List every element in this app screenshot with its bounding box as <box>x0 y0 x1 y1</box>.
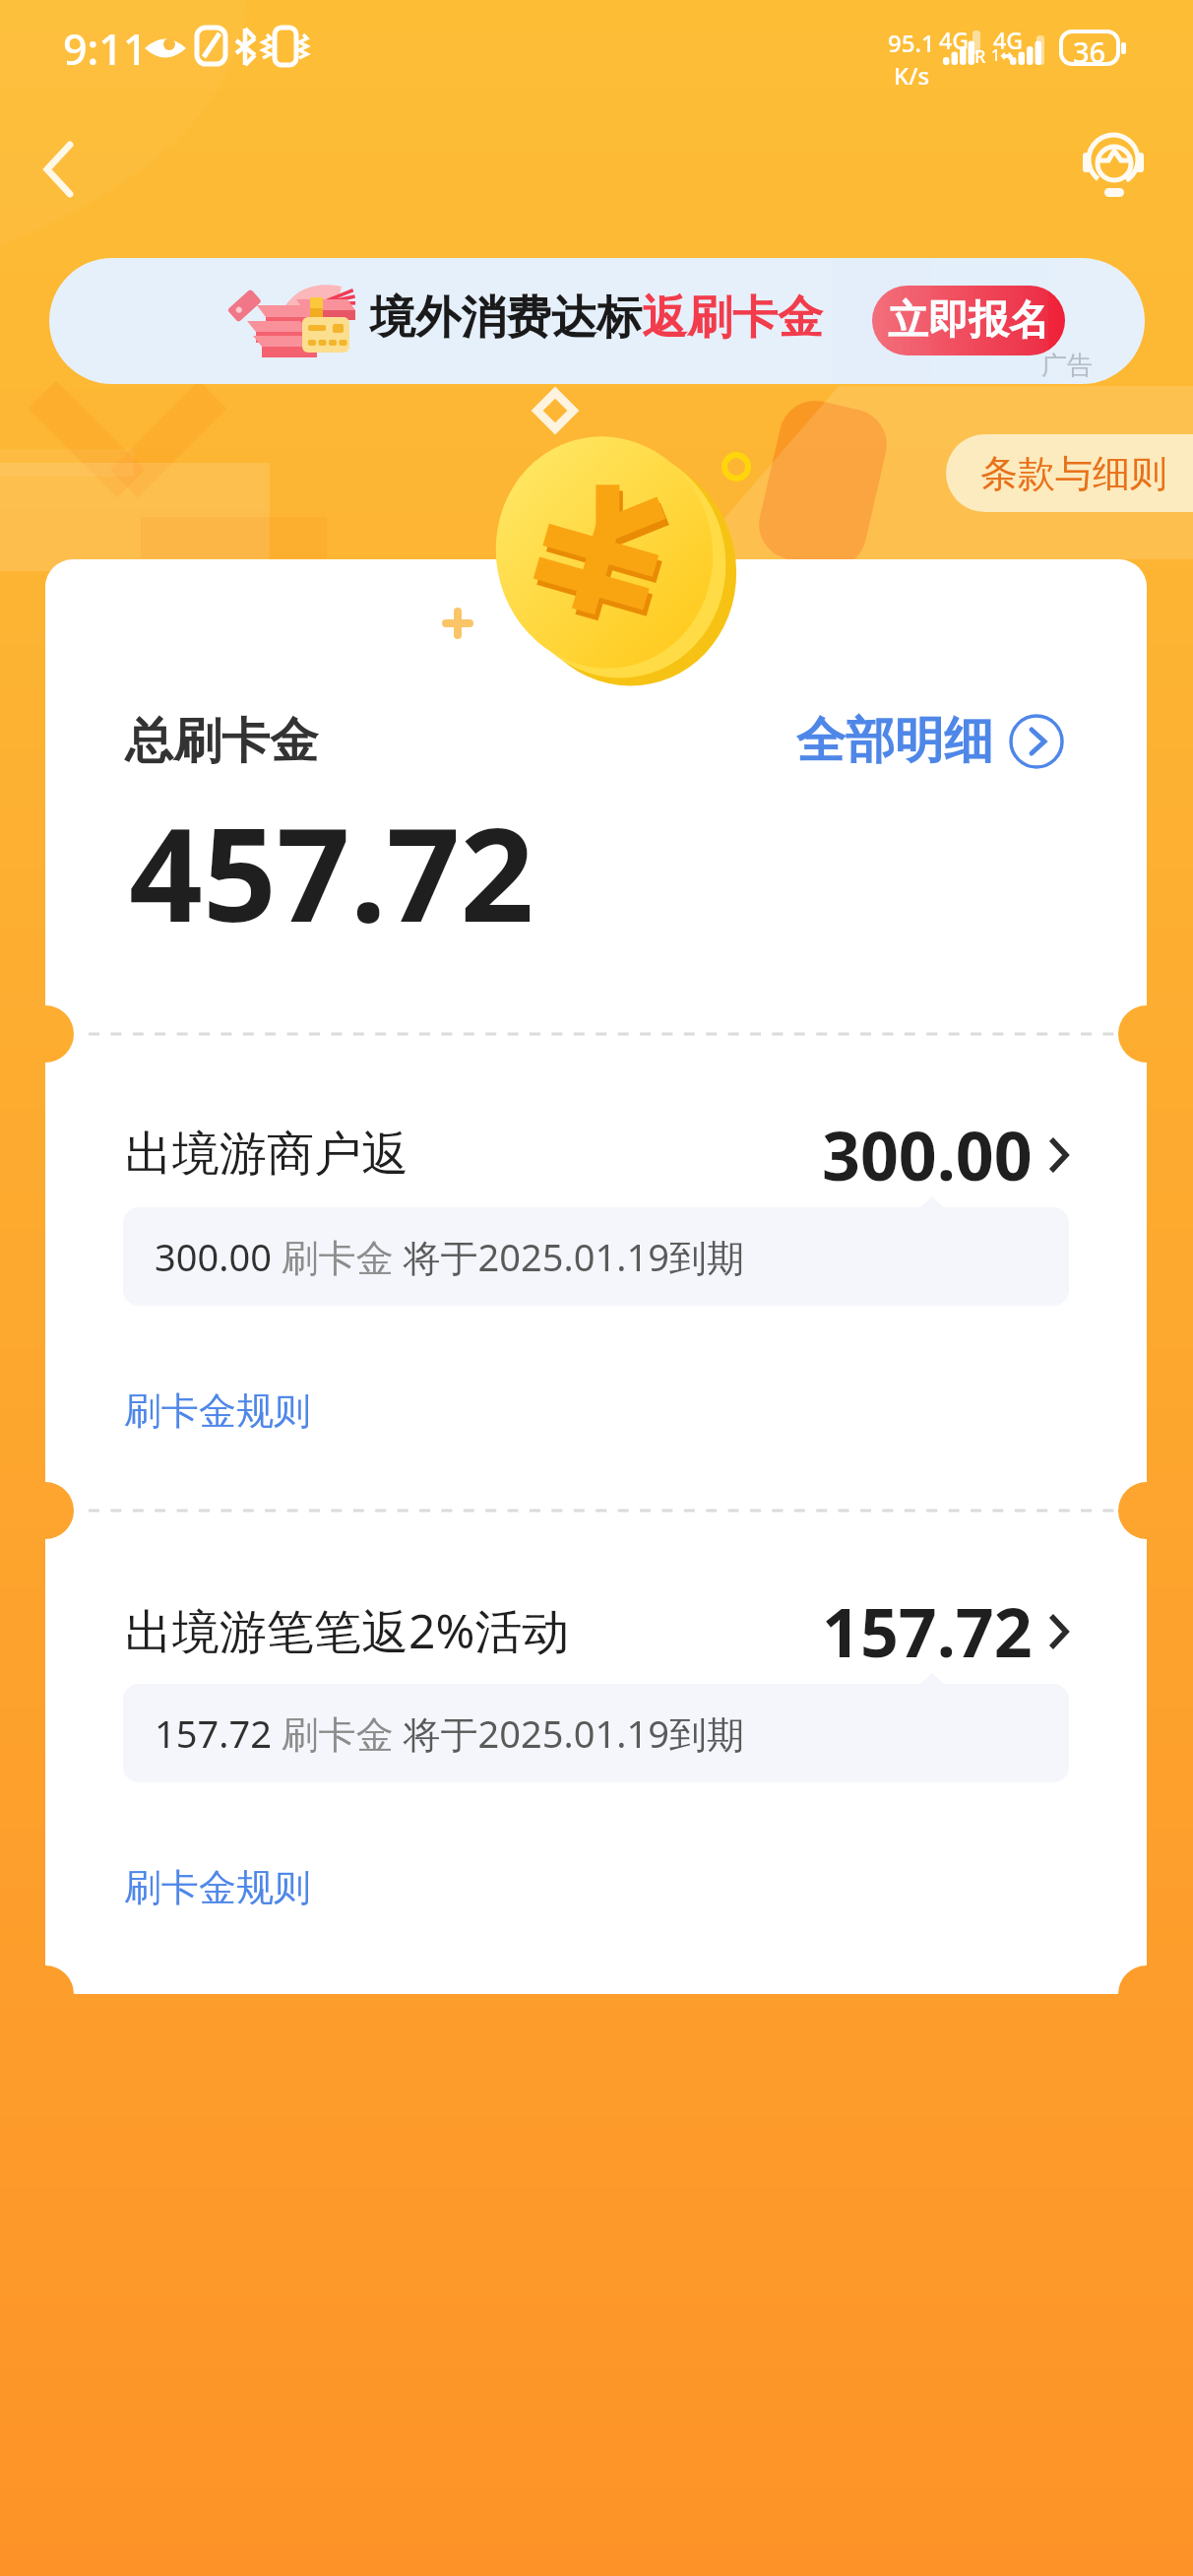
button[interactable]: 刷卡金规则 <box>108 1374 354 1449</box>
staticText: 4G <box>939 25 969 55</box>
staticText: 立即报名 <box>888 295 1049 347</box>
button[interactable]: 立即报名 <box>872 286 1065 355</box>
staticText: 36 <box>1073 32 1106 71</box>
staticText: 157.72 <box>822 1585 1033 1677</box>
button[interactable]: 条款与细则 <box>946 434 1193 512</box>
button[interactable]: Back <box>22 130 100 209</box>
staticText: 457.72 <box>129 784 534 941</box>
staticText: 条款与细则 <box>980 450 1167 497</box>
staticText: 刷卡金规则 <box>124 1387 311 1435</box>
staticText: 刷卡金规则 <box>124 1864 311 1911</box>
staticText: 300.00 刷卡金 将于2025.01.19到期 <box>155 1231 744 1282</box>
staticText: 出境游商户返 <box>125 1125 408 1184</box>
button[interactable]: 出境游笔笔返2%活动 <box>0 1583 1193 1678</box>
button[interactable]: 全部明细 <box>796 710 1063 772</box>
staticText: 广告 <box>1041 350 1093 382</box>
staticText: 总刷卡金 <box>125 711 318 772</box>
button[interactable]: 出境游商户返 <box>0 1107 1193 1201</box>
staticText: 157.72 刷卡金 将于2025.01.19到期 <box>155 1707 744 1759</box>
button[interactable]: Customer service <box>1078 129 1157 208</box>
staticText: 300.00 <box>822 1109 1033 1200</box>
staticText: 全部明细 <box>796 710 993 772</box>
staticText: 出境游笔笔返2%活动 <box>125 1598 570 1663</box>
staticText: 95.1 <box>888 27 935 59</box>
staticText: 境外消费达标 <box>370 290 642 347</box>
button[interactable]: 刷卡金规则 <box>108 1850 354 1925</box>
staticText: 9:11 <box>63 20 148 78</box>
staticText: 返刷卡金 <box>642 290 823 347</box>
staticText: K/s <box>894 59 930 92</box>
staticText: R <box>974 44 986 69</box>
staticText: 1⬌ <box>991 44 1014 66</box>
staticText: 4G <box>993 25 1023 55</box>
button[interactable]: 境外消费达标 <box>49 258 1145 384</box>
